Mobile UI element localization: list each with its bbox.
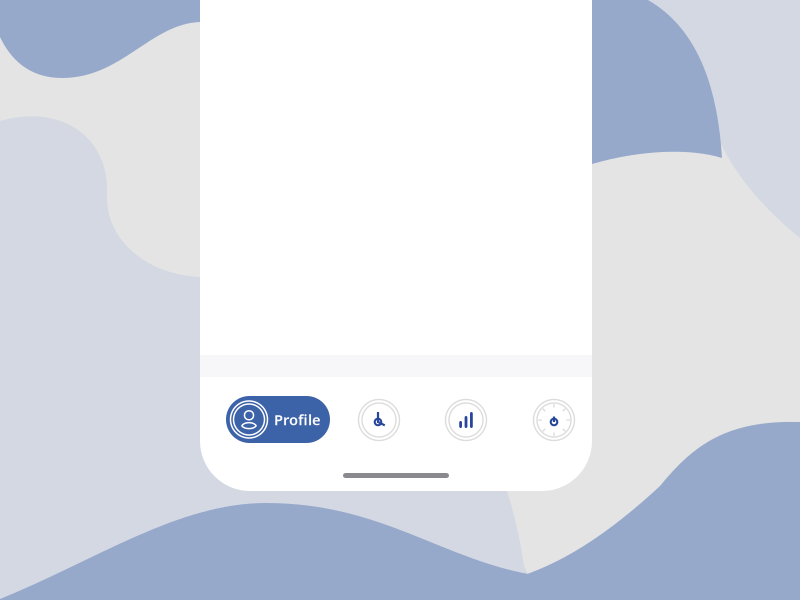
button[interactable]: Timer — [531, 397, 577, 443]
button[interactable]: Activity — [356, 397, 402, 443]
staticText: Profile — [274, 410, 321, 429]
button[interactable]: Profile — [226, 396, 330, 443]
button[interactable]: Statistics — [443, 397, 489, 443]
